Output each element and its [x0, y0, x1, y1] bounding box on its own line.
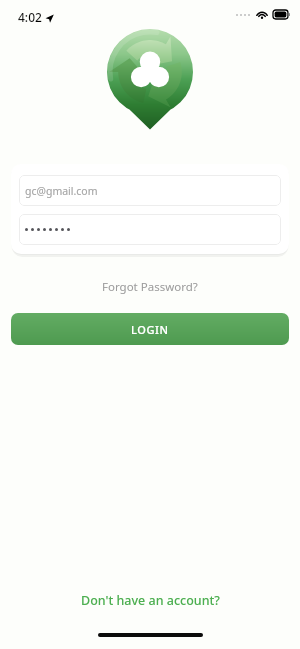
- staticText: 4:02: [18, 9, 42, 25]
- staticText: Forgot Password?: [102, 279, 198, 295]
- button[interactable]: [19, 214, 281, 245]
- button[interactable]: Don't have an account?: [71, 588, 230, 613]
- staticText: LOGIN: [131, 322, 169, 337]
- staticText: gc@gmail.com: [25, 184, 98, 198]
- button[interactable]: Forgot Password?: [94, 276, 206, 298]
- button[interactable]: gc@gmail.com: [19, 175, 281, 206]
- button[interactable]: LOGIN: [11, 313, 289, 345]
- staticText: Don't have an account?: [81, 592, 220, 609]
